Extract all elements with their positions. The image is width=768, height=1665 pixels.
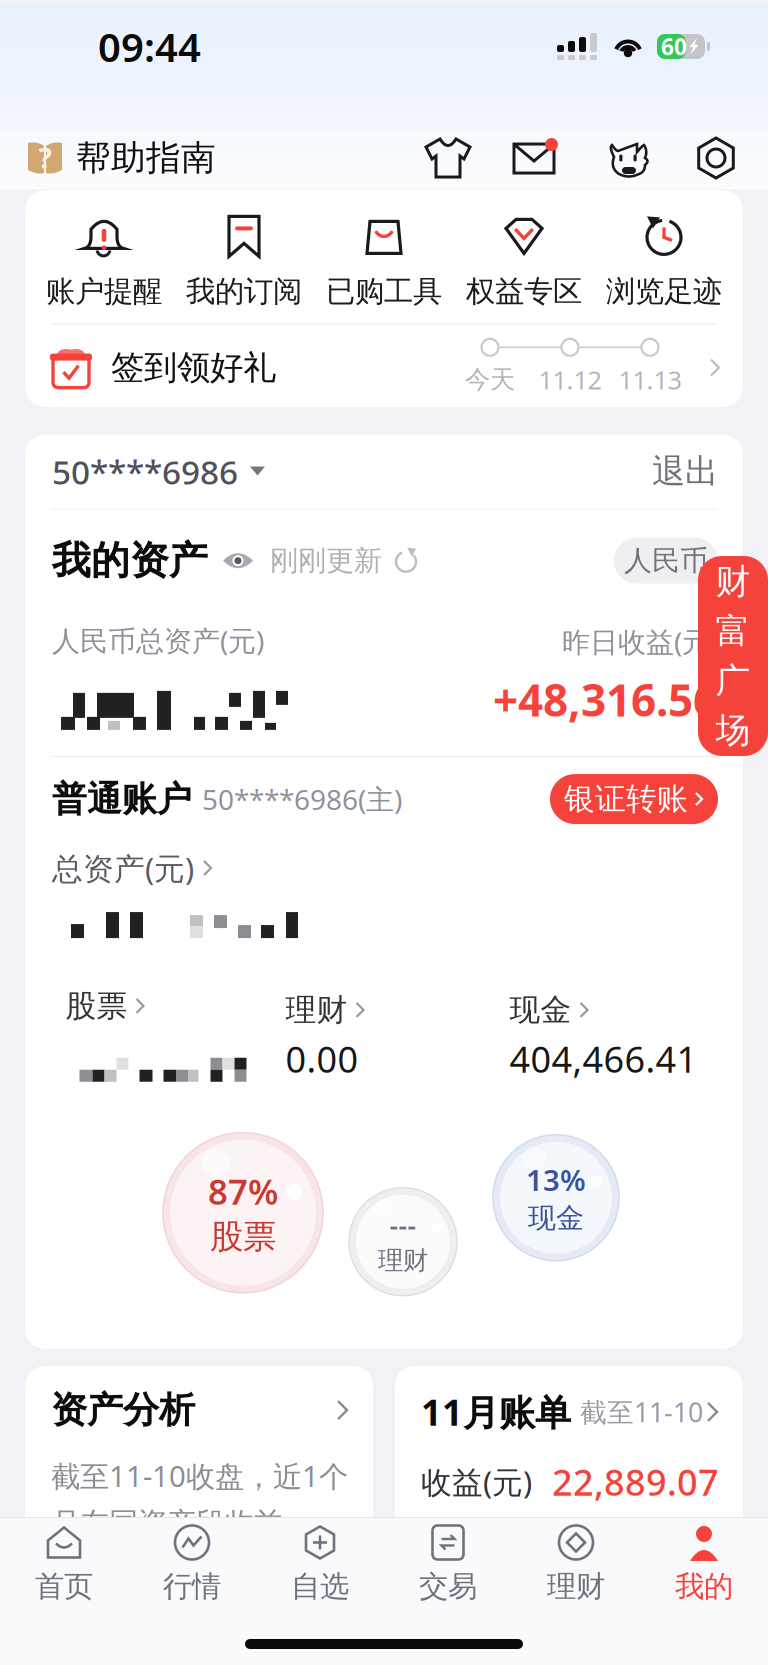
button[interactable]: 浏览足迹 xyxy=(594,208,734,312)
staticText: 签到领好礼 xyxy=(111,347,276,388)
staticText: 帮助指南 xyxy=(76,137,216,179)
button[interactable]: 人民币 xyxy=(614,538,718,584)
button[interactable]: 交易 xyxy=(384,1521,512,1607)
staticText: 股票 xyxy=(210,1216,276,1257)
staticText: 60 xyxy=(661,31,687,61)
staticText: 87% xyxy=(208,1168,278,1214)
button[interactable]: 我的订阅 xyxy=(174,208,314,312)
button[interactable]: 11月账单 xyxy=(395,1366,743,1665)
button[interactable]: 理财 xyxy=(512,1521,640,1607)
staticText: 自选 xyxy=(291,1568,349,1604)
staticText: 普通账户 xyxy=(52,778,192,820)
button[interactable]: 行情 xyxy=(128,1521,256,1607)
staticText: 首页 xyxy=(35,1568,93,1604)
staticText: 交易 xyxy=(419,1568,477,1604)
staticText: 理财 xyxy=(547,1568,605,1604)
button[interactable]: 自选 xyxy=(256,1521,384,1607)
staticText: 50****6986 xyxy=(52,449,238,494)
staticText: 月在同资产段收益 xyxy=(51,1505,283,1541)
staticText: 404,466.41 xyxy=(509,1035,697,1083)
button[interactable]: 账户提醒 xyxy=(34,208,174,312)
button[interactable]: 退出 xyxy=(652,451,718,492)
staticText: +0.00% xyxy=(594,1522,719,1569)
button[interactable]: 财 xyxy=(698,556,768,756)
staticText: 现金 xyxy=(528,1201,584,1235)
staticText: 09:44 xyxy=(98,20,201,73)
staticText: 我的 xyxy=(675,1568,733,1604)
staticText: 今天 xyxy=(465,364,515,395)
button[interactable]: 权益专区 xyxy=(454,208,594,312)
staticText: 截至11-10收盘，近1个 xyxy=(51,1456,348,1495)
staticText: 人民币总资产(元) xyxy=(52,622,264,659)
staticText: 11月账单 xyxy=(421,1388,571,1436)
staticText: 行情 xyxy=(163,1568,221,1604)
staticText: 已购工具 xyxy=(326,273,442,309)
button[interactable]: 首页 xyxy=(0,1521,128,1607)
staticText: 11.12 xyxy=(538,363,601,396)
staticText: 22,889.07 xyxy=(552,1458,719,1506)
staticText: 我的订阅 xyxy=(186,273,302,309)
button[interactable]: 智能助手 xyxy=(604,135,652,181)
staticText: 财 xyxy=(715,560,750,603)
staticText: --- xyxy=(389,1207,416,1243)
staticText: 富 xyxy=(715,610,750,652)
staticText: 截至11-10 xyxy=(580,1394,703,1430)
staticText: 退出 xyxy=(652,451,718,492)
staticText: 13% xyxy=(526,1160,586,1199)
staticText: 0.00 xyxy=(285,1035,358,1083)
button[interactable]: 消息 xyxy=(511,136,559,180)
staticText: 11.13 xyxy=(618,363,681,396)
staticText: ? xyxy=(38,139,51,177)
button[interactable]: 银证转账 xyxy=(550,774,718,824)
staticText: 账户提醒 xyxy=(46,273,162,309)
staticText: 50****6986(主) xyxy=(202,780,402,818)
staticText: 收益(元) xyxy=(421,1461,532,1502)
staticText: 理财 xyxy=(285,991,347,1029)
button[interactable]: 我的 xyxy=(640,1521,768,1607)
staticText: 刚刚更新 xyxy=(270,543,382,578)
staticText: 股票 xyxy=(65,987,127,1025)
staticText: 昨日收益(元) xyxy=(562,623,718,660)
button[interactable]: 50****6986 xyxy=(52,449,265,494)
staticText: 权益专区 xyxy=(466,273,582,309)
staticText: +48,316.56 xyxy=(493,670,718,729)
staticText: 总资产(元) xyxy=(52,848,194,888)
staticText: 资产分析 xyxy=(51,1388,195,1432)
button[interactable]: 已购工具 xyxy=(314,208,454,312)
button[interactable]: 资产分析 xyxy=(25,1366,373,1665)
staticText: 我的资产 xyxy=(52,537,208,584)
button[interactable]: 签到领好礼 xyxy=(25,325,743,411)
button[interactable]: ? xyxy=(27,137,216,179)
staticText: 广 xyxy=(715,659,750,702)
staticText: 理财 xyxy=(378,1245,428,1276)
staticText: 银证转账 xyxy=(564,780,688,818)
button[interactable]: 主题皮肤 xyxy=(423,136,473,180)
staticText: 浏览足迹 xyxy=(606,273,722,309)
staticText: 收益率 xyxy=(421,1527,514,1564)
staticText: 人民币 xyxy=(624,543,708,578)
button[interactable]: 设置 xyxy=(693,135,739,181)
staticText: 现金 xyxy=(509,991,571,1029)
staticText: 场 xyxy=(715,709,750,752)
